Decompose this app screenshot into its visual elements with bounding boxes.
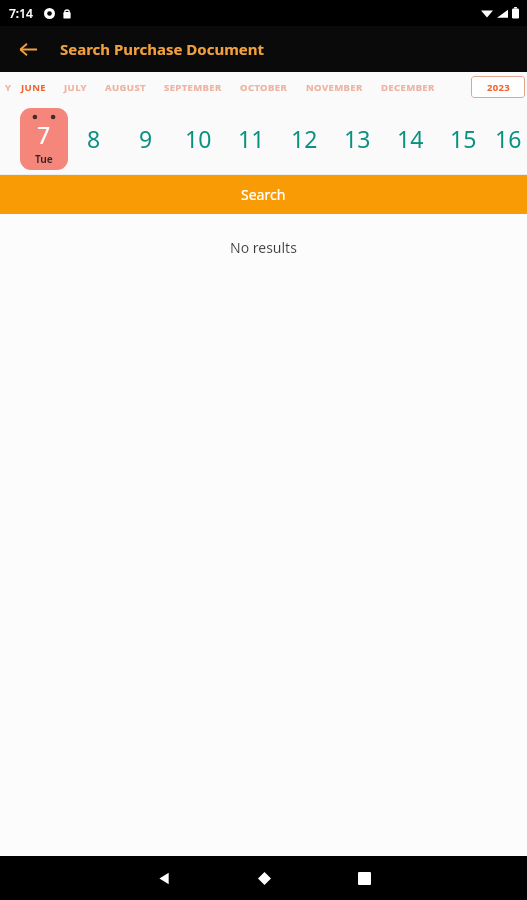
staticText: Search Purchase Document xyxy=(60,39,265,59)
button[interactable]: DECEMBER xyxy=(372,72,444,102)
staticText: 10 xyxy=(185,123,212,154)
staticText: OCTOBER xyxy=(240,81,288,94)
button[interactable]: NOVEMBER xyxy=(297,72,372,102)
button[interactable]: JULY xyxy=(55,72,96,102)
button[interactable]: 9 xyxy=(120,102,172,175)
staticText: DECEMBER xyxy=(381,81,435,94)
staticText: No results xyxy=(230,238,297,257)
staticText: 12 xyxy=(291,123,318,154)
staticText: 13 xyxy=(344,123,371,154)
staticText: SEPTEMBER xyxy=(164,81,222,94)
button[interactable]: JUNE xyxy=(12,72,55,102)
staticText: 16 xyxy=(495,123,522,154)
button[interactable]: 15 xyxy=(437,102,490,175)
button[interactable]: 13 xyxy=(331,102,384,175)
staticText: 11 xyxy=(238,123,265,154)
button[interactable]: SEPTEMBER xyxy=(155,72,231,102)
button[interactable]: Search xyxy=(0,175,527,214)
button[interactable]: 10 xyxy=(172,102,225,175)
button[interactable]: 14 xyxy=(384,102,437,175)
staticText: AUGUST xyxy=(105,81,146,94)
button[interactable]: Back xyxy=(120,856,208,900)
button[interactable]: 8 xyxy=(68,102,120,175)
staticText: Tue xyxy=(35,152,53,166)
staticText: 7 xyxy=(37,119,51,150)
button[interactable]: Back xyxy=(8,29,48,69)
button[interactable]: Y xyxy=(0,72,12,102)
staticText: JULY xyxy=(64,81,87,94)
staticText: NOVEMBER xyxy=(306,81,363,94)
button[interactable]: 7 xyxy=(20,108,68,170)
staticText: 9 xyxy=(139,123,153,154)
button[interactable]: Recent apps xyxy=(320,856,408,900)
button[interactable]: 2023 xyxy=(471,76,525,98)
staticText: Y xyxy=(5,81,12,94)
staticText: 14 xyxy=(397,123,424,154)
button[interactable]: 12 xyxy=(278,102,331,175)
staticText: Search xyxy=(241,185,286,204)
button[interactable]: 16 xyxy=(490,102,527,175)
button[interactable]: AUGUST xyxy=(96,72,155,102)
staticText: 8 xyxy=(87,123,101,154)
button[interactable]: OCTOBER xyxy=(231,72,297,102)
staticText: 7:14 xyxy=(9,5,33,21)
staticText: 2023 xyxy=(487,81,510,94)
button[interactable]: Home xyxy=(208,856,320,900)
staticText: 15 xyxy=(450,123,477,154)
button[interactable]: 11 xyxy=(225,102,278,175)
staticText: JUNE xyxy=(21,81,46,94)
